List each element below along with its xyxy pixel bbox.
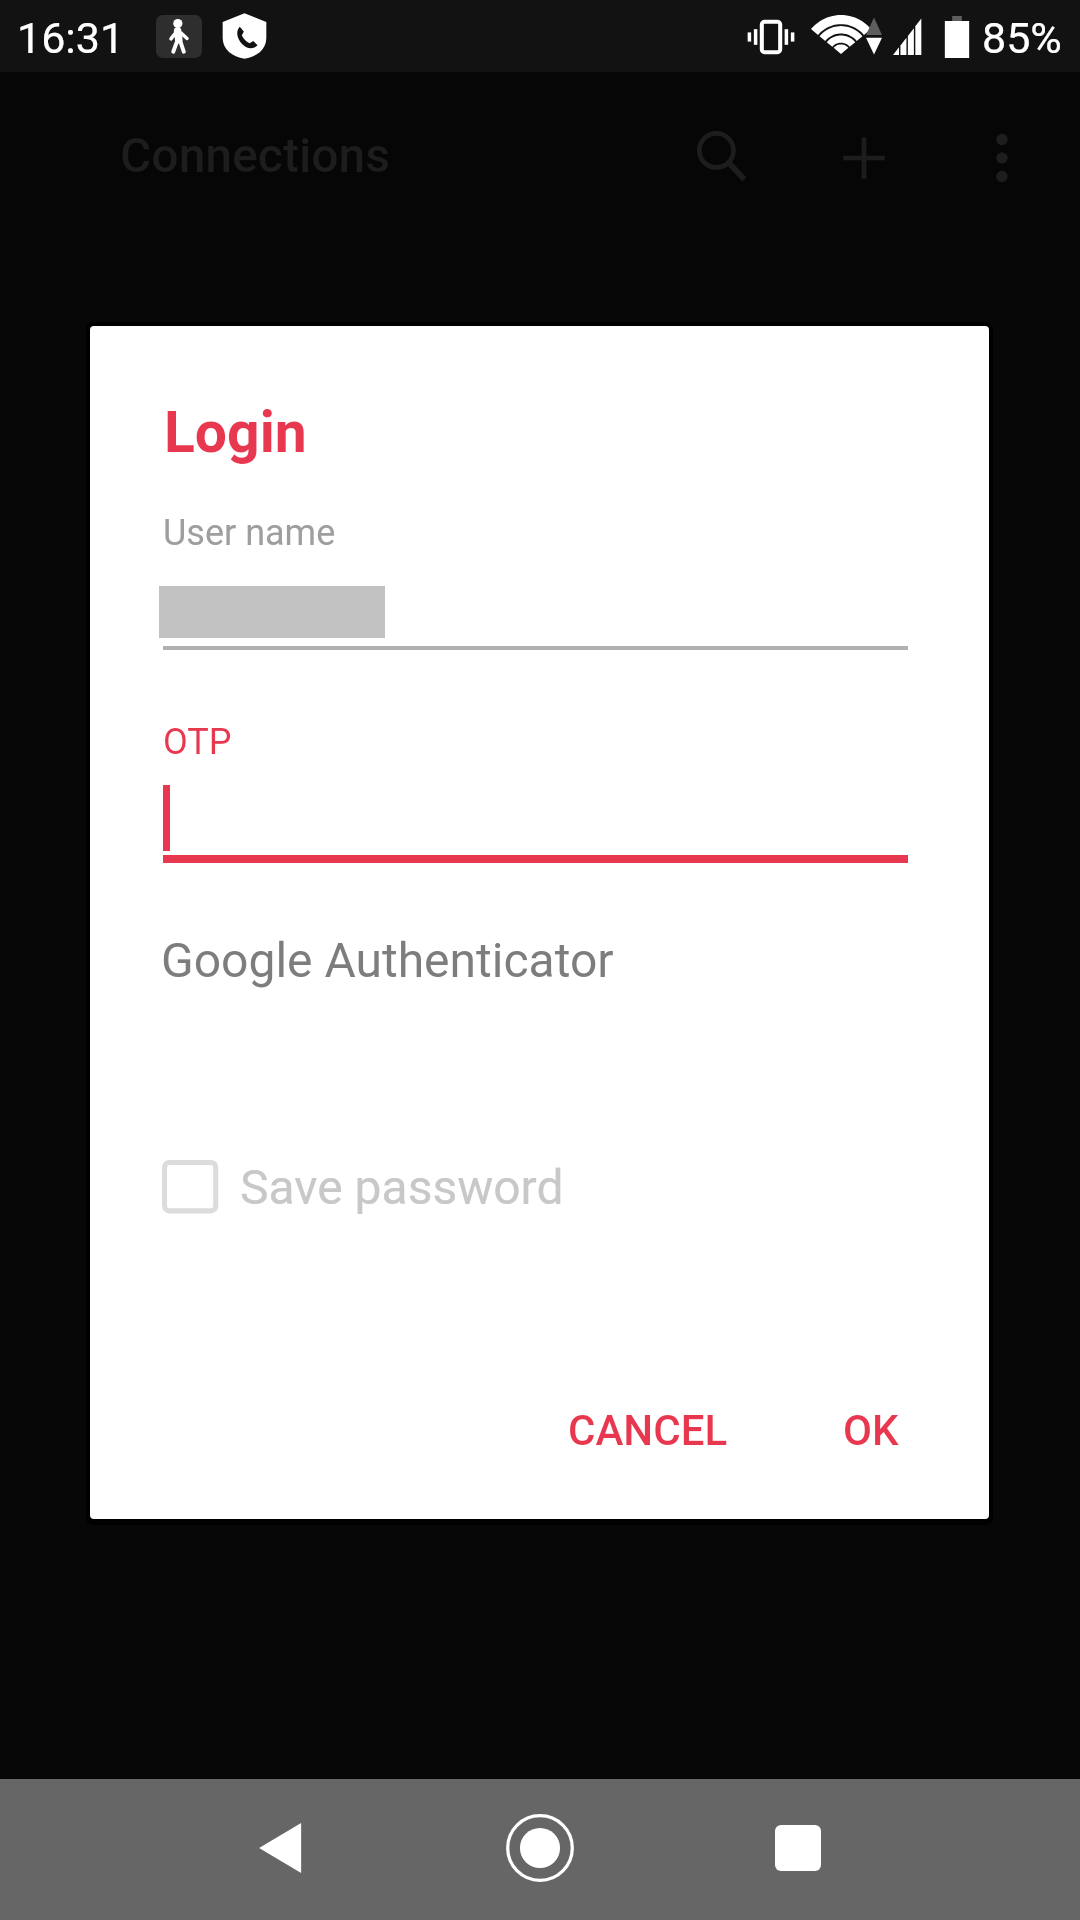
staticText: Login [164, 399, 307, 466]
button[interactable]: Save password [161, 1156, 564, 1218]
button[interactable]: Google Authenticator [161, 932, 614, 988]
button[interactable]: OK [821, 1388, 921, 1473]
button[interactable]: CANCEL [546, 1388, 750, 1473]
button[interactable]: Back [229, 1798, 329, 1898]
staticText: 85% [982, 13, 1062, 63]
staticText: User name [163, 512, 336, 554]
staticText: OK [843, 1406, 899, 1455]
button[interactable]: Search [672, 106, 772, 206]
button[interactable]: Home [490, 1798, 590, 1898]
button[interactable]: Recent apps [748, 1798, 848, 1898]
staticText: Save password [240, 1159, 564, 1215]
button[interactable]: Add [814, 108, 914, 208]
staticText: CANCEL [568, 1406, 728, 1455]
staticText: Connections [120, 127, 391, 183]
staticText: OTP [163, 721, 232, 763]
staticText: 16:31 [17, 13, 125, 63]
button[interactable]: More options [952, 108, 1052, 208]
